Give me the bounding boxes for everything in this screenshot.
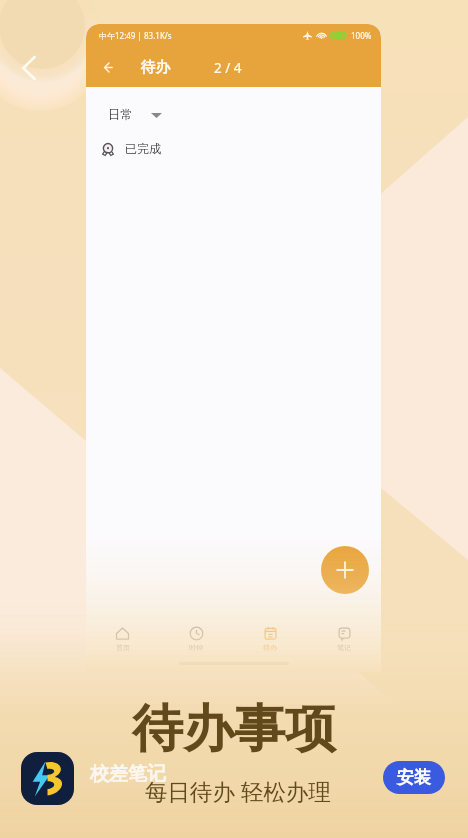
staticText: 2 / 4	[214, 59, 242, 77]
staticText: 校差笔记	[90, 762, 166, 786]
button[interactable]: 首页	[86, 607, 159, 659]
button[interactable]: 安装	[383, 761, 445, 794]
button[interactable]: 待办	[233, 607, 307, 659]
button[interactable]: Back	[12, 52, 44, 84]
staticText: 笔记	[337, 643, 351, 652]
staticText: 待办事项	[132, 697, 336, 761]
staticText: 日常	[108, 107, 133, 123]
staticText: 安装	[397, 767, 431, 788]
button[interactable]: 日常	[108, 107, 162, 123]
button[interactable]: App icon	[21, 752, 74, 805]
staticText: 首页	[116, 643, 130, 652]
staticText: 时钟	[189, 643, 203, 652]
button[interactable]: Add task	[321, 546, 369, 594]
button[interactable]: Back	[93, 47, 119, 87]
button[interactable]: 时钟	[159, 607, 233, 659]
button[interactable]: 笔记	[307, 607, 381, 659]
staticText: 已完成	[125, 141, 161, 156]
staticText: 每日待办 轻松办理	[145, 776, 331, 807]
staticText: 待办	[263, 643, 277, 652]
staticText: 100%	[351, 30, 372, 41]
staticText: 待办	[141, 58, 170, 76]
staticText: 中午12:49 | 83.1K/s	[99, 30, 172, 41]
button[interactable]: 已完成	[101, 141, 161, 156]
